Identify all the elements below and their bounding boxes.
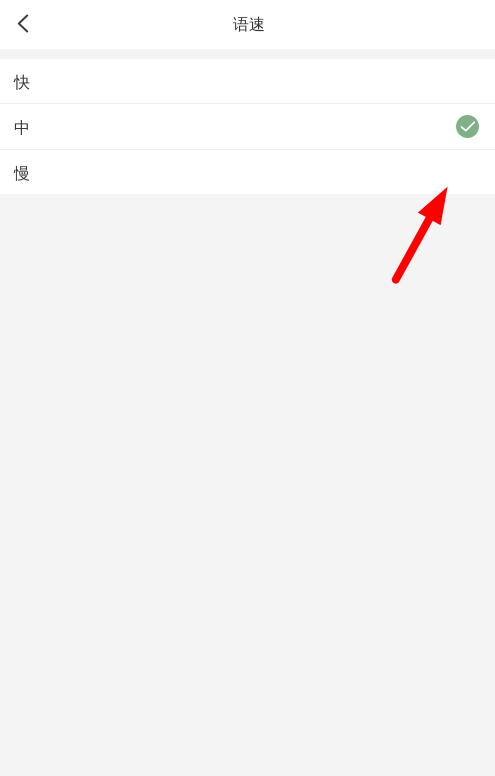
- staticText: 慢: [14, 164, 30, 183]
- button[interactable]: 快: [0, 59, 495, 103]
- button[interactable]: 慢: [0, 150, 495, 194]
- button[interactable]: Back: [0, 0, 46, 49]
- staticText: 中: [14, 118, 30, 138]
- button[interactable]: 中: [0, 104, 495, 149]
- staticText: 快: [14, 73, 30, 92]
- staticText: 语速: [233, 15, 265, 34]
